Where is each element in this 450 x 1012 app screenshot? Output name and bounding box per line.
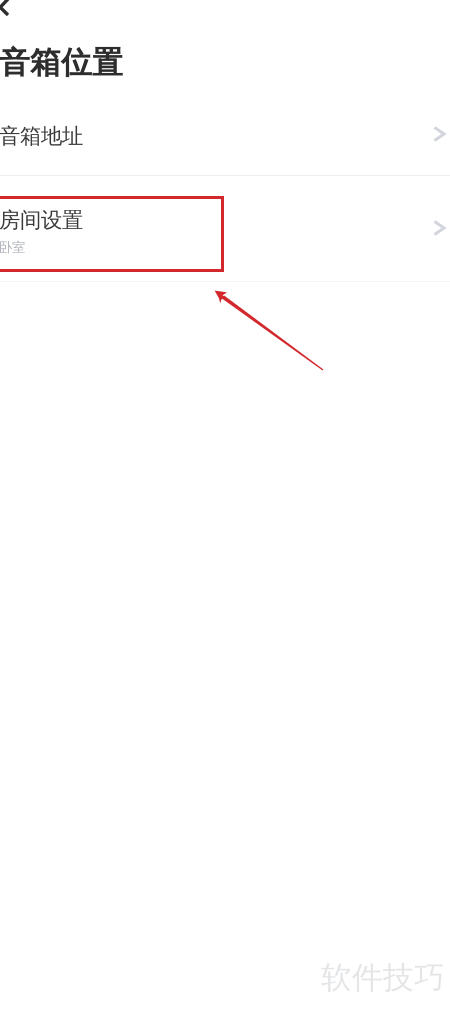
staticText: 房间设置 <box>0 207 83 233</box>
button[interactable]: Back <box>0 0 9 16</box>
staticText: 音箱地址 <box>0 123 83 149</box>
staticText: 软件技巧 <box>321 959 445 997</box>
staticText: 音箱位置 <box>0 44 123 82</box>
button[interactable]: 房间设置 <box>0 176 450 281</box>
staticText: 卧室 <box>0 239 25 255</box>
button[interactable]: 音箱地址 <box>0 96 450 176</box>
